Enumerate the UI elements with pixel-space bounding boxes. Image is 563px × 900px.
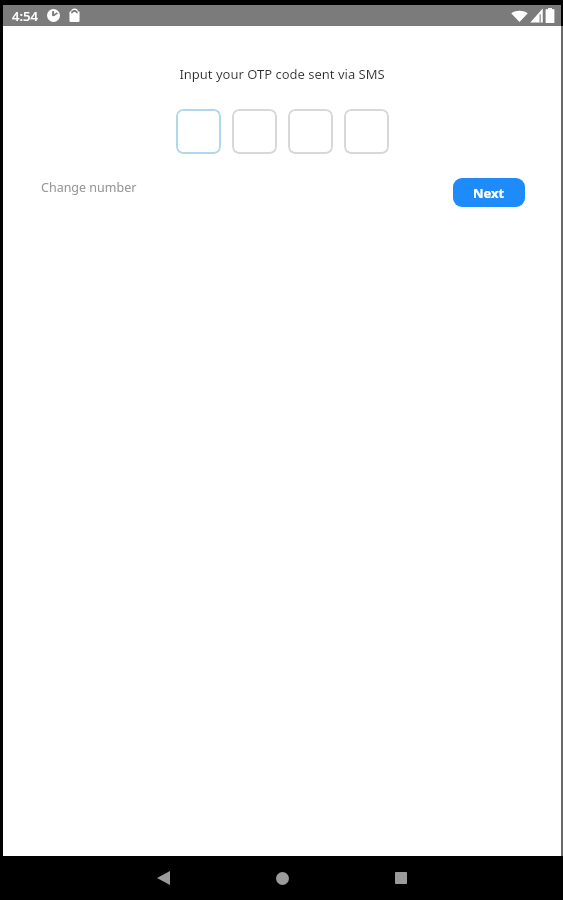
button[interactable]: [232, 109, 277, 154]
staticText: Change number: [41, 179, 137, 196]
button[interactable]: Back: [143, 858, 183, 898]
button[interactable]: [344, 109, 389, 154]
button[interactable]: Recent apps: [381, 858, 421, 898]
button[interactable]: [176, 109, 221, 154]
button[interactable]: [288, 109, 333, 154]
button[interactable]: Next: [453, 178, 525, 207]
button[interactable]: Change number: [41, 179, 137, 196]
staticText: 4:54: [12, 7, 38, 25]
staticText: Input your OTP code sent via SMS: [3, 65, 561, 83]
button[interactable]: Home: [262, 858, 302, 898]
staticText: Next: [473, 184, 505, 202]
